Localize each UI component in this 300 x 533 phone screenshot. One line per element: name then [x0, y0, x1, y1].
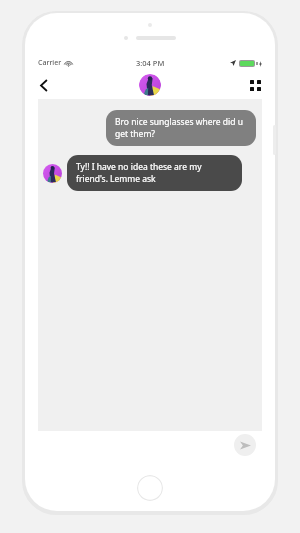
button[interactable]: Profile	[139, 74, 161, 96]
button[interactable]: Send	[38, 431, 262, 465]
button[interactable]: More options	[243, 73, 267, 97]
staticText: Carrier	[38, 58, 62, 68]
staticText: Ty!! I have no idea these are my friend'…	[76, 161, 233, 185]
button[interactable]: Send	[234, 434, 256, 456]
button[interactable]: Ty!! I have no idea these are my friend'…	[67, 155, 242, 191]
staticText: Bro nice sunglasses where did u get them…	[115, 116, 247, 140]
button[interactable]: Bro nice sunglasses where did u get them…	[106, 110, 256, 146]
button[interactable]: Home	[137, 475, 163, 501]
staticText: 3:04 PM	[136, 58, 165, 68]
button[interactable]: Back	[31, 72, 57, 98]
